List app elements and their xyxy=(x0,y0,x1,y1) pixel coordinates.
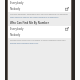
other: Open xyxy=(65,27,69,31)
other: Open xyxy=(65,7,69,11)
staticText: People who have your number in their add… xyxy=(10,39,69,42)
staticText: profile and connect with you. xyxy=(10,42,39,45)
staticText: they need to search for their profile in… xyxy=(10,16,59,19)
staticText: Everybody xyxy=(10,1,24,5)
button[interactable]: Nobody xyxy=(8,6,71,12)
staticText: Choose whether members will see this web… xyxy=(10,13,69,16)
staticText: Who Can Find Me By Number xyxy=(10,21,49,25)
button[interactable]: Everybody xyxy=(8,26,71,32)
staticText: Nobody xyxy=(10,7,21,11)
button[interactable]: Everybody xyxy=(8,0,71,6)
staticText: Everybody xyxy=(10,27,24,31)
staticText: Nobody xyxy=(10,33,21,37)
button[interactable]: Nobody xyxy=(8,32,71,38)
